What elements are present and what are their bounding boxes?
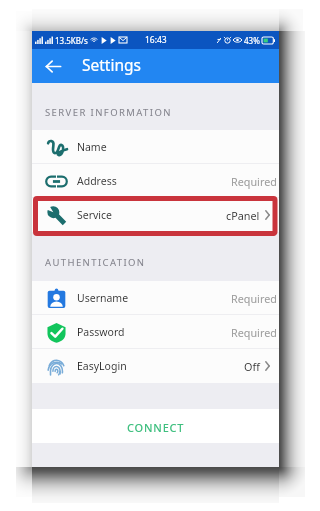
staticText: EasyLogin [77,359,127,373]
staticText: Required [231,325,277,340]
staticText: Password [77,325,125,339]
staticText: Username [77,291,129,305]
staticText: Address [77,174,117,188]
staticText: Required [231,291,277,306]
staticText: Name [77,140,107,154]
staticText: Settings [82,54,141,75]
button[interactable]: Back [39,52,67,80]
staticText: Required [231,174,277,189]
button[interactable]: Name [32,130,279,164]
button[interactable]: Username [32,281,279,315]
staticText: cPanel [226,208,260,223]
staticText: Service [77,208,113,222]
staticText: 16:43 [145,34,167,46]
staticText: CONNECT [127,420,185,435]
button[interactable]: EasyLogin [32,349,279,383]
button[interactable]: Service [32,198,279,232]
staticText: SERVER INFORMATION [45,106,172,119]
button[interactable]: Password [32,315,279,349]
staticText: 13.5KB/s [55,35,88,46]
button[interactable]: Address [32,164,279,198]
staticText: Off [244,359,260,374]
staticText: AUTHENTICATION [45,256,146,269]
staticText: 43% [244,35,260,46]
button[interactable]: CONNECT [32,409,279,443]
